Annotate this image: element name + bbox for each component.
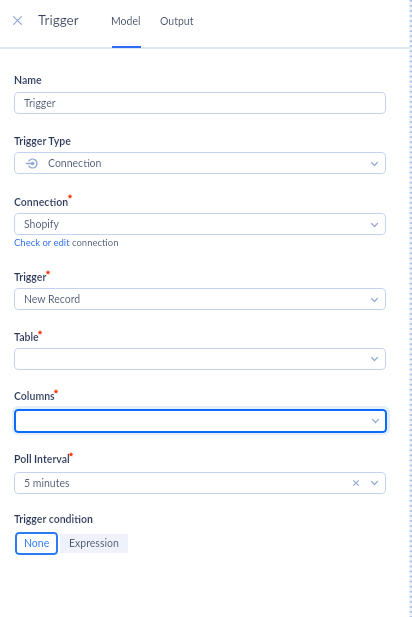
staticText: Output: [160, 15, 194, 28]
staticText: Columns: [14, 390, 55, 403]
button[interactable]: [14, 348, 386, 370]
staticText: Table: [14, 331, 39, 344]
staticText: Trigger condition: [14, 513, 93, 526]
button[interactable]: Expression: [60, 534, 128, 553]
staticText: New Record: [24, 293, 81, 306]
staticText: Trigger Type: [14, 135, 71, 148]
staticText: Name: [14, 74, 42, 87]
staticText: Connection: [14, 196, 69, 209]
staticText: Expression: [69, 537, 119, 550]
button[interactable]: [14, 409, 387, 433]
staticText: Poll Interval: [14, 453, 70, 466]
staticText: Trigger: [38, 12, 79, 28]
button[interactable]: 5 minutes: [14, 472, 386, 494]
staticText: Model: [111, 15, 141, 28]
button[interactable]: Close: [11, 14, 23, 26]
button[interactable]: Clear: [349, 476, 363, 490]
button[interactable]: Check or edit connection: [14, 237, 119, 248]
button[interactable]: Trigger: [14, 92, 386, 114]
staticText: 5 minutes: [24, 477, 70, 490]
staticText: Shopify: [24, 218, 59, 231]
button[interactable]: Output: [153, 0, 201, 47]
staticText: Trigger: [14, 271, 47, 284]
button[interactable]: Shopify: [14, 213, 386, 235]
button[interactable]: Connection: [14, 152, 386, 174]
button[interactable]: New Record: [14, 288, 386, 310]
staticText: None: [24, 537, 50, 550]
staticText: Connection: [48, 157, 102, 170]
button[interactable]: Model: [104, 0, 148, 47]
staticText: Trigger: [24, 97, 56, 110]
staticText: Check or edit connection: [14, 237, 119, 248]
button[interactable]: None: [15, 532, 58, 555]
